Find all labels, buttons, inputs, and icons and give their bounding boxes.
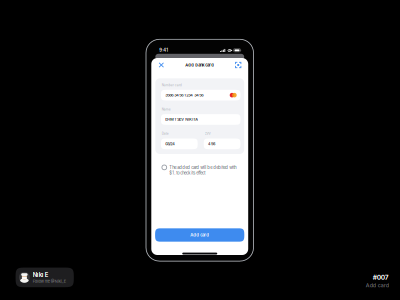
staticText: 9:41 <box>159 48 168 53</box>
staticText: Add card <box>366 282 389 289</box>
button[interactable]: Close <box>155 58 168 71</box>
staticText: Niki E <box>33 271 49 278</box>
button[interactable]: Niki E, follow me @Niki_E <box>16 268 74 287</box>
staticText: 456 <box>208 141 215 146</box>
staticText: Name <box>162 107 171 111</box>
staticText: EFIMTSEV NIKITA <box>165 117 198 122</box>
staticText: 3566 3456 1234 3456 <box>165 93 203 97</box>
staticText: Follow me @Niki_E <box>33 279 66 284</box>
button[interactable]: Scan card <box>232 58 245 71</box>
staticText: CVV <box>205 132 211 135</box>
staticText: The added card will be debited with <box>169 165 236 170</box>
staticText: $1, to check its effect <box>169 170 205 175</box>
staticText: Add bank card <box>185 62 214 67</box>
staticText: Number card <box>162 83 182 87</box>
staticText: #007 <box>373 273 389 281</box>
staticText: Date <box>162 132 169 135</box>
staticText: 03/24 <box>165 141 175 146</box>
button[interactable]: Add card <box>155 228 244 242</box>
staticText: Add card <box>190 232 209 238</box>
